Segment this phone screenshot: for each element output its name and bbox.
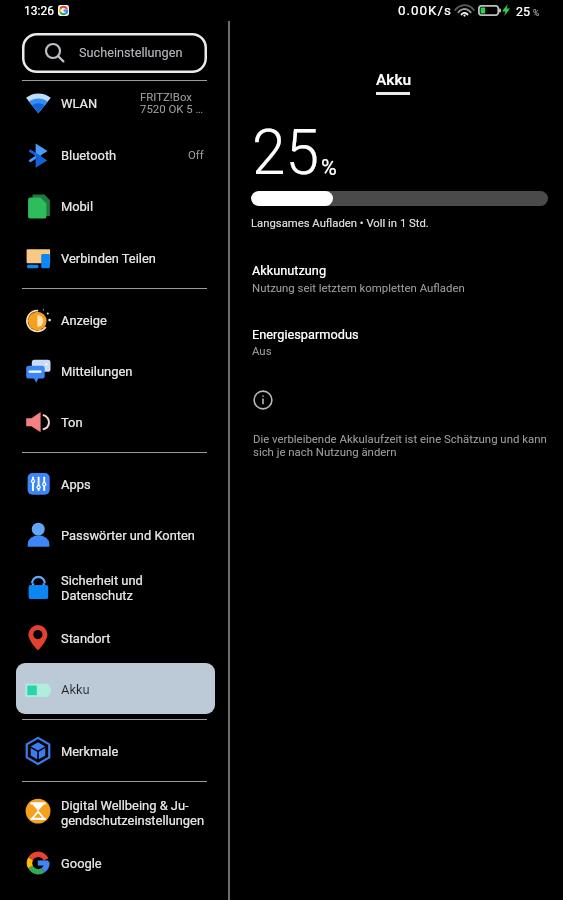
button[interactable]: Akku bbox=[16, 663, 215, 714]
staticText: 25 bbox=[252, 116, 320, 189]
staticText: Aus bbox=[252, 344, 272, 357]
staticText: Digital Wellbeing & Ju- gendschutzeinste… bbox=[61, 798, 215, 828]
button[interactable]: WLAN bbox=[16, 77, 215, 128]
staticText: Google bbox=[61, 856, 215, 871]
button[interactable]: Verbinden Teilen bbox=[16, 232, 215, 283]
staticText: Akku bbox=[376, 71, 412, 89]
staticText: Sicherheit und Datenschutz bbox=[61, 573, 215, 603]
staticText: Nutzung seit letztem kompletten Aufladen bbox=[252, 281, 465, 294]
staticText: Passwörter und Konten bbox=[61, 528, 215, 543]
other: Battery 25 percent, charging bbox=[478, 5, 502, 16]
staticText: Ton bbox=[61, 415, 215, 430]
button[interactable]: Passwörter und Konten bbox=[16, 509, 215, 560]
button[interactable]: Mitteilungen bbox=[16, 345, 215, 396]
staticText: Anzeige bbox=[61, 313, 215, 328]
button[interactable]: Sucheinstellungen bbox=[22, 33, 207, 73]
staticText: Verbinden Teilen bbox=[61, 251, 215, 266]
staticText: % bbox=[533, 8, 540, 18]
staticText: Merkmale bbox=[61, 744, 215, 759]
staticText: Bluetooth bbox=[61, 148, 188, 163]
staticText: Off bbox=[188, 148, 204, 161]
staticText: Sucheinstellungen bbox=[79, 45, 183, 60]
staticText: 13:26 bbox=[24, 4, 54, 18]
button[interactable]: Sicherheit und Datenschutz bbox=[16, 561, 215, 612]
staticText: 25 bbox=[516, 4, 531, 19]
button[interactable]: Merkmale bbox=[16, 725, 215, 776]
button[interactable]: Google bbox=[16, 837, 215, 888]
staticText: FRITZ!Box 7520 OK 5 … bbox=[140, 90, 204, 116]
staticText: Akkunutzung bbox=[252, 263, 327, 278]
staticText: WLAN bbox=[61, 96, 140, 111]
staticText: % bbox=[321, 155, 337, 180]
other: Wi-Fi signal bbox=[455, 4, 474, 17]
staticText: Mobil bbox=[61, 199, 215, 214]
button[interactable]: Mobil bbox=[16, 180, 215, 231]
staticText: Standort bbox=[61, 631, 215, 646]
staticText: Akku bbox=[61, 682, 215, 697]
staticText: Langsames Aufladen • Voll in 1 Std. bbox=[251, 217, 429, 230]
button[interactable]: Bluetooth bbox=[16, 129, 215, 180]
staticText: 0.00K/s bbox=[398, 3, 452, 19]
button[interactable]: Ton bbox=[16, 396, 215, 447]
button[interactable]: Energiesparmodus bbox=[240, 320, 548, 368]
button[interactable]: Apps bbox=[16, 458, 215, 509]
staticText: Energiesparmodus bbox=[252, 327, 359, 342]
button[interactable]: Digital Wellbeing & Ju- gendschutzeinste… bbox=[16, 786, 215, 837]
button[interactable]: Info bbox=[253, 390, 273, 410]
staticText: Mitteilungen bbox=[61, 364, 215, 379]
button[interactable]: Akkunutzung bbox=[240, 257, 548, 305]
button[interactable]: Anzeige bbox=[16, 294, 215, 345]
staticText: Apps bbox=[61, 477, 215, 492]
button[interactable]: Standort bbox=[16, 612, 215, 663]
staticText: Die verbleibende Akkulaufzeit ist eine S… bbox=[253, 432, 549, 459]
